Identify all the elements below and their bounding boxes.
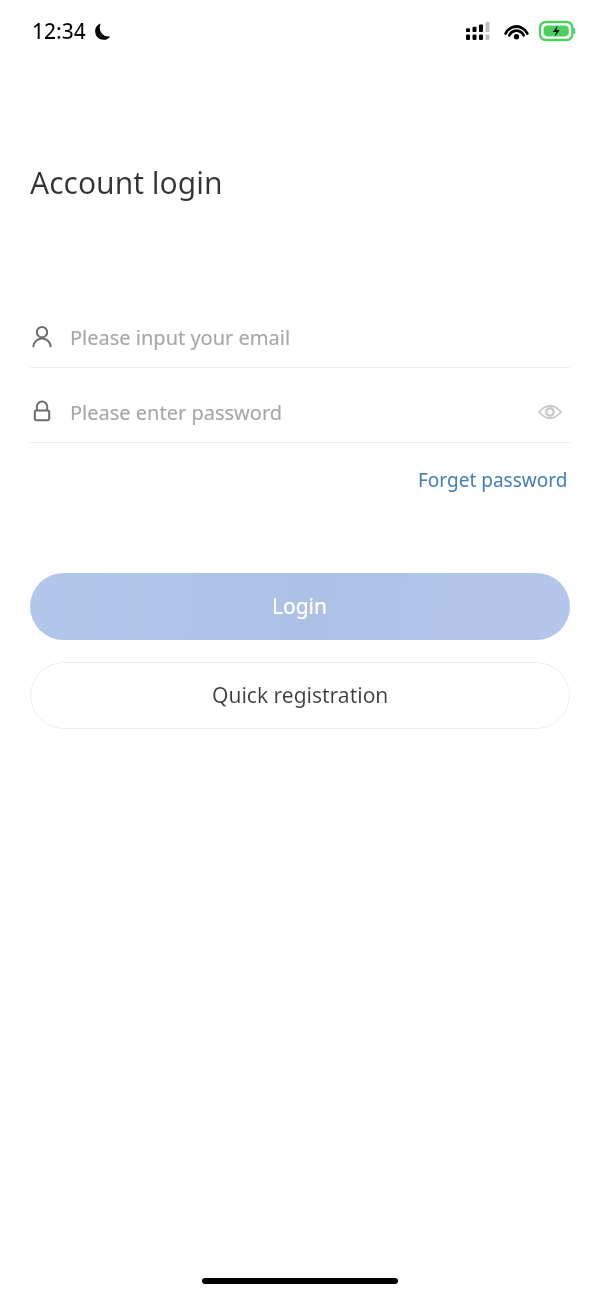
button[interactable]: Please enter password [30, 382, 570, 442]
button[interactable]: Login [30, 573, 570, 640]
button[interactable]: Show password [530, 392, 570, 432]
button[interactable]: Quick registration [30, 662, 570, 729]
staticText: Forget password [418, 467, 568, 493]
staticText: Login [272, 592, 328, 621]
staticText: Quick registration [212, 681, 389, 710]
button[interactable]: Forget password [416, 463, 570, 497]
staticText: Please input your email [70, 324, 291, 351]
button[interactable]: Please input your email [30, 307, 570, 368]
staticText: 12:34 [32, 17, 86, 46]
staticText: Please enter password [70, 399, 283, 426]
staticText: Account login [30, 162, 223, 203]
